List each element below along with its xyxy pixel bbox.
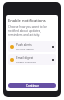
button[interactable]: Push alerts [8, 41, 56, 52]
staticText: Weekly summary [16, 60, 37, 63]
staticText: Push alerts [16, 43, 32, 47]
staticText: Email digest [16, 56, 34, 60]
staticText: On your device [16, 47, 34, 50]
button[interactable]: Email digest [8, 54, 56, 65]
staticText: Continue [26, 84, 39, 88]
staticText: Enable notifications [8, 18, 46, 23]
staticText: Choose how you want to be notified about… [8, 25, 56, 37]
button[interactable]: Continue [8, 83, 56, 88]
